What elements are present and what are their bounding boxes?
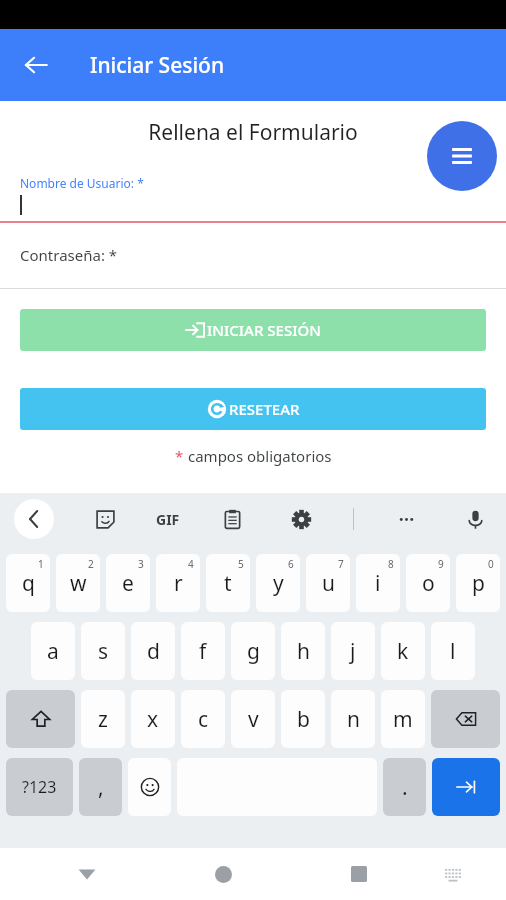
staticText: f: [199, 637, 207, 666]
button[interactable]: w: [56, 554, 100, 612]
button[interactable]: More options: [389, 502, 423, 536]
staticText: campos obligatorios: [188, 446, 332, 466]
button[interactable]: a: [31, 622, 75, 680]
staticText: q: [22, 569, 35, 598]
staticText: Iniciar Sesión: [90, 51, 225, 80]
staticText: 5: [238, 557, 244, 571]
button[interactable]: b: [281, 690, 325, 748]
staticText: p: [472, 569, 485, 598]
button[interactable]: g: [231, 622, 275, 680]
button[interactable]: Enter: [432, 758, 500, 816]
button[interactable]: c: [181, 690, 225, 748]
button[interactable]: f: [181, 622, 225, 680]
staticText: h: [297, 637, 310, 666]
button[interactable]: Clipboard: [215, 502, 249, 536]
button[interactable]: e: [106, 554, 150, 612]
button[interactable]: r: [156, 554, 200, 612]
staticText: u: [322, 569, 335, 598]
staticText: .: [402, 773, 408, 802]
staticText: e: [122, 569, 134, 598]
staticText: g: [247, 637, 260, 666]
button[interactable]: RESETEAR: [20, 388, 486, 430]
staticText: l: [450, 637, 456, 666]
staticText: s: [98, 637, 109, 666]
staticText: v: [248, 705, 259, 734]
button[interactable]: Keyboard: [433, 854, 473, 894]
button[interactable]: Back: [14, 499, 54, 539]
staticText: k: [397, 637, 409, 666]
staticText: a: [47, 637, 59, 666]
button[interactable]: z: [81, 690, 125, 748]
staticText: y: [273, 569, 284, 598]
button[interactable]: l: [431, 622, 475, 680]
staticText: c: [198, 705, 209, 734]
button[interactable]: t: [206, 554, 250, 612]
staticText: 3: [138, 557, 144, 571]
staticText: Nombre de Usuario: *: [20, 175, 144, 191]
staticText: w: [70, 569, 87, 598]
staticText: Rellena el Formulario: [0, 118, 506, 147]
staticText: Contraseña: *: [20, 245, 118, 265]
staticText: i: [375, 569, 381, 598]
staticText: 9: [438, 557, 444, 571]
staticText: r: [174, 569, 183, 598]
staticText: z: [98, 705, 108, 734]
button[interactable]: ?123: [6, 758, 73, 816]
staticText: n: [347, 705, 360, 734]
button[interactable]: Back: [14, 43, 58, 87]
staticText: m: [393, 705, 413, 734]
button[interactable]: Contraseña: *: [0, 245, 506, 289]
staticText: x: [147, 705, 159, 734]
button[interactable]: Back: [67, 854, 107, 894]
button[interactable]: d: [131, 622, 175, 680]
staticText: 1: [38, 557, 44, 571]
staticText: 8: [388, 557, 394, 571]
staticText: 6: [288, 557, 294, 571]
staticText: d: [147, 637, 160, 666]
button[interactable]: Shift: [6, 690, 75, 748]
staticText: INICIAR SESIÓN: [207, 320, 321, 340]
button[interactable]: j: [331, 622, 375, 680]
button[interactable]: Emoji: [128, 758, 171, 816]
button[interactable]: Home: [203, 854, 243, 894]
button[interactable]: Menu: [427, 121, 497, 191]
staticText: GIF: [156, 510, 180, 529]
staticText: ,: [98, 773, 104, 802]
button[interactable]: .: [383, 758, 426, 816]
button[interactable]: v: [231, 690, 275, 748]
button[interactable]: x: [131, 690, 175, 748]
button[interactable]: s: [81, 622, 125, 680]
button[interactable]: Settings: [284, 502, 318, 536]
button[interactable]: h: [281, 622, 325, 680]
button[interactable]: Nombre de Usuario: *: [0, 175, 506, 223]
staticText: j: [350, 637, 356, 666]
staticText: 2: [88, 557, 94, 571]
staticText: *: [175, 446, 188, 466]
button[interactable]: INICIAR SESIÓN: [20, 309, 486, 351]
button[interactable]: y: [256, 554, 300, 612]
button[interactable]: q: [6, 554, 50, 612]
staticText: b: [297, 705, 310, 734]
button[interactable]: u: [306, 554, 350, 612]
staticText: o: [422, 569, 435, 598]
button[interactable]: Recents: [339, 854, 379, 894]
staticText: RESETEAR: [229, 399, 300, 419]
staticText: 0: [488, 557, 494, 571]
button[interactable]: Backspace: [431, 690, 500, 748]
staticText: t: [224, 569, 232, 598]
button[interactable]: Sticker: [88, 502, 122, 536]
button[interactable]: k: [381, 622, 425, 680]
button[interactable]: i: [356, 554, 400, 612]
button[interactable]: p: [456, 554, 500, 612]
button[interactable]: o: [406, 554, 450, 612]
button[interactable]: ,: [79, 758, 122, 816]
button[interactable]: Voice input: [458, 502, 492, 536]
button[interactable]: GIF: [156, 510, 180, 529]
button[interactable]: m: [381, 690, 425, 748]
button[interactable]: n: [331, 690, 375, 748]
staticText: 7: [338, 557, 344, 571]
staticText: ?123: [22, 776, 57, 798]
staticText: 4: [188, 557, 194, 571]
